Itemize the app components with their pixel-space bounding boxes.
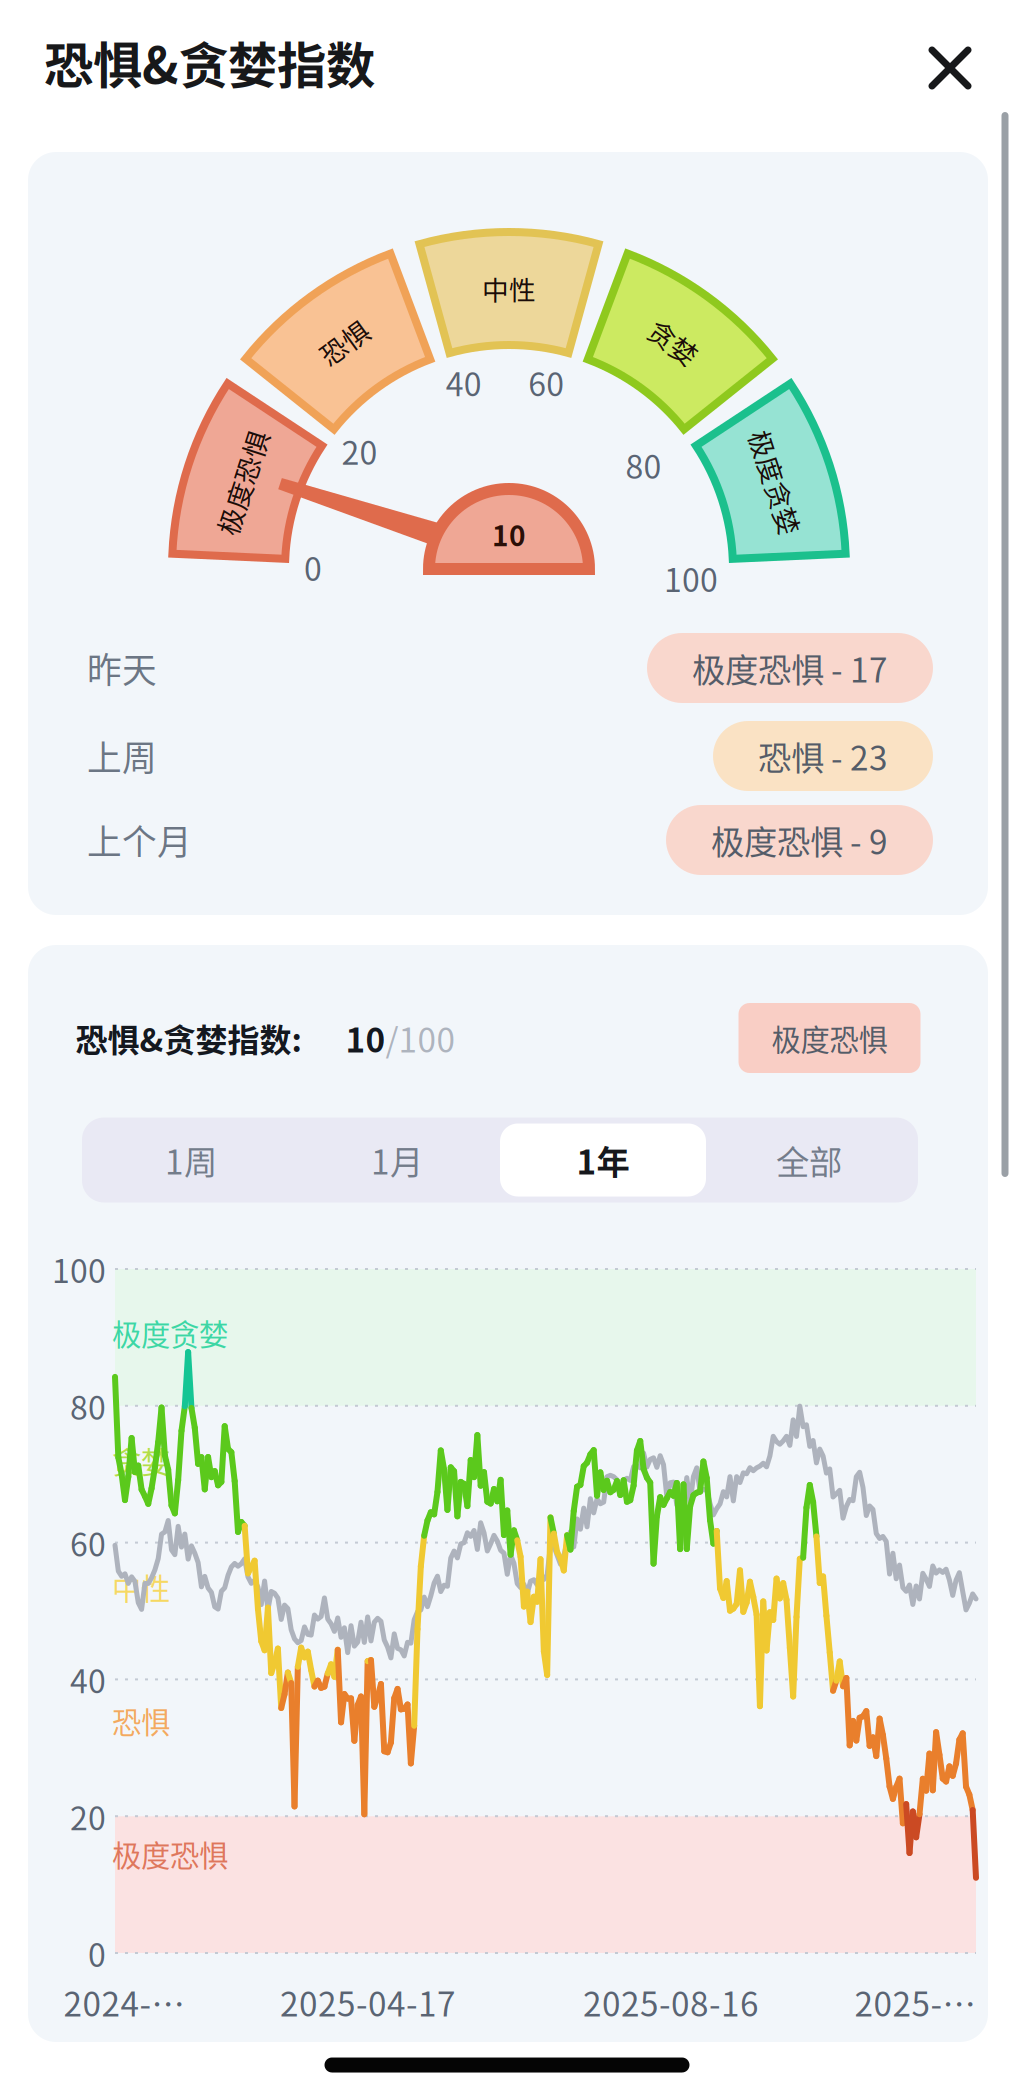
- staticText: 恐惧&贪婪指数:: [75, 1015, 301, 1061]
- staticText: 20: [70, 1793, 106, 1839]
- staticText: 100: [664, 555, 718, 601]
- staticText: 40: [70, 1656, 106, 1702]
- staticText: 60: [70, 1519, 106, 1566]
- staticText: 10: [492, 514, 526, 554]
- staticText: 恐惧&贪婪指数: [44, 26, 375, 98]
- staticText: 80: [70, 1383, 106, 1429]
- button[interactable]: 极度恐惧: [738, 1003, 920, 1073]
- staticText: 全部: [776, 1136, 842, 1184]
- staticText: 极度恐惧 - 9: [711, 816, 888, 864]
- button[interactable]: Close: [906, 24, 994, 112]
- staticText: 极度恐惧: [112, 1833, 228, 1875]
- staticText: 中性: [112, 1566, 170, 1608]
- staticText: 20: [341, 428, 377, 474]
- staticText: 极度贪婪: [112, 1311, 228, 1354]
- staticText: 2025-08-16: [583, 1978, 759, 2026]
- button[interactable]: 1年: [500, 1123, 706, 1196]
- staticText: 恐惧 - 23: [758, 732, 888, 780]
- staticText: 极度恐惧: [771, 1017, 887, 1059]
- staticText: 贪婪: [112, 1439, 170, 1482]
- staticText: 贪婪: [647, 323, 701, 361]
- staticText: 昨天: [87, 643, 157, 693]
- staticText: 100: [52, 1246, 106, 1292]
- button[interactable]: 全部: [706, 1123, 912, 1196]
- staticText: 2025-…: [854, 1978, 975, 2026]
- staticText: 10: [345, 1014, 385, 1062]
- staticText: 极度恐惧 - 17: [692, 644, 888, 692]
- staticText: /100: [385, 1014, 455, 1062]
- staticText: 0: [304, 544, 322, 590]
- staticText: 中性: [482, 269, 536, 308]
- staticText: 极度贪婪: [722, 463, 830, 502]
- staticText: 0: [88, 1930, 106, 1976]
- staticText: 2025-04-17: [280, 1978, 456, 2026]
- staticText: 上个月: [87, 815, 192, 865]
- button[interactable]: 1月: [294, 1123, 500, 1196]
- staticText: 上周: [87, 731, 157, 781]
- staticText: 2024-…: [63, 1978, 184, 2026]
- staticText: 80: [626, 442, 662, 488]
- staticText: 极度恐惧: [188, 463, 296, 502]
- staticText: 1月: [371, 1136, 423, 1184]
- staticText: 60: [528, 359, 564, 405]
- button[interactable]: 1周: [88, 1123, 294, 1196]
- staticText: 恐惧: [317, 323, 371, 361]
- staticText: 恐惧: [112, 1699, 170, 1742]
- staticText: 1周: [165, 1136, 217, 1184]
- staticText: 40: [446, 359, 482, 405]
- staticText: 1年: [576, 1136, 629, 1184]
